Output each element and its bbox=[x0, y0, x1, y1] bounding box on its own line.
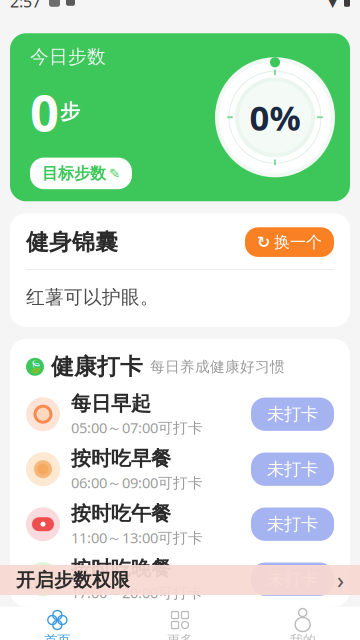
staticText: 我的 bbox=[290, 632, 316, 640]
button[interactable]: 我的 bbox=[241, 607, 360, 640]
staticText: 健康打卡 bbox=[51, 353, 143, 381]
button[interactable]: 按时吃晚餐 bbox=[10, 552, 350, 607]
staticText: 健身锦囊 bbox=[26, 228, 118, 256]
staticText: 按时吃早餐 bbox=[71, 446, 171, 471]
button[interactable]: 更多 bbox=[119, 607, 241, 640]
staticText: ▼ bbox=[327, 0, 338, 10]
staticText: 2:57 bbox=[10, 0, 41, 12]
staticText: 今日步数 bbox=[30, 45, 106, 68]
staticText: 每日早起 bbox=[71, 391, 151, 416]
button[interactable]: 按时吃早餐 bbox=[10, 442, 350, 497]
staticText: 按时吃晚餐 bbox=[71, 556, 171, 581]
staticText: 红薯可以护眼。 bbox=[26, 286, 159, 309]
staticText: 步 bbox=[60, 100, 80, 124]
staticText: 开启步数权限 bbox=[16, 568, 130, 591]
staticText: 11:00～13:00可打卡 bbox=[71, 528, 203, 547]
staticText: 未打卡 bbox=[267, 459, 318, 480]
button[interactable]: 每日早起 bbox=[10, 387, 350, 442]
staticText: 0 bbox=[30, 78, 59, 146]
staticText: ↻ bbox=[257, 233, 270, 251]
staticText: 未打卡 bbox=[267, 404, 318, 425]
button[interactable]: ↻ bbox=[245, 227, 334, 257]
button[interactable]: 目标步数 bbox=[30, 158, 132, 189]
staticText: 换一个 bbox=[274, 232, 322, 252]
staticText: 0% bbox=[249, 94, 300, 140]
staticText: › bbox=[337, 565, 344, 595]
button[interactable]: 按时吃午餐 bbox=[10, 497, 350, 552]
staticText: 未打卡 bbox=[267, 514, 318, 535]
staticText: 🍃 bbox=[27, 360, 42, 374]
staticText: 06:00～09:00可打卡 bbox=[71, 473, 203, 492]
button[interactable]: 开启步数权限 bbox=[0, 565, 360, 595]
button[interactable]: 首页 bbox=[0, 607, 119, 640]
staticText: 17:00～20:00可打卡 bbox=[71, 583, 203, 602]
staticText: 目标步数 bbox=[42, 164, 106, 183]
staticText: 05:00～07:00可打卡 bbox=[71, 418, 203, 437]
staticText: 更多 bbox=[167, 632, 193, 640]
staticText: 每日养成健康好习惯 bbox=[150, 358, 285, 376]
staticText: ✎ bbox=[109, 166, 120, 181]
staticText: 首页 bbox=[44, 632, 70, 640]
staticText: 按时吃午餐 bbox=[71, 501, 171, 526]
